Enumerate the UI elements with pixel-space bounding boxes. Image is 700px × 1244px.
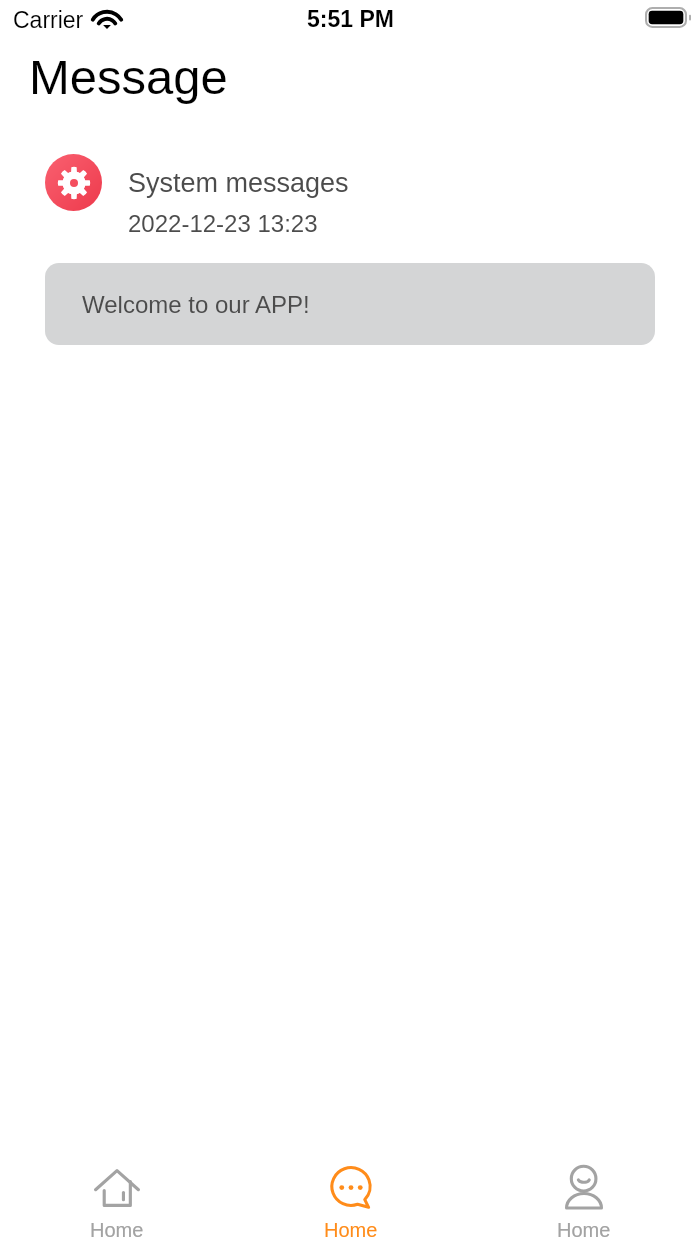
staticText: Home bbox=[90, 1219, 144, 1241]
staticText: 5:51 PM bbox=[307, 6, 394, 32]
staticText: Welcome to our APP! bbox=[82, 291, 310, 318]
staticText: Carrier bbox=[13, 7, 84, 33]
staticText: 2022-12-23 13:23 bbox=[128, 210, 318, 237]
button[interactable]: Welcome to our APP! bbox=[45, 263, 655, 345]
button[interactable]: Home bbox=[0, 1144, 233, 1244]
staticText: System messages bbox=[128, 168, 349, 198]
button[interactable]: Profile bbox=[467, 1144, 700, 1244]
staticText: Home bbox=[324, 1219, 378, 1241]
staticText: Home bbox=[557, 1219, 611, 1241]
button[interactable]: Messages bbox=[234, 1144, 467, 1244]
staticText: Message bbox=[29, 50, 228, 105]
button[interactable]: System messages bbox=[45, 150, 655, 240]
